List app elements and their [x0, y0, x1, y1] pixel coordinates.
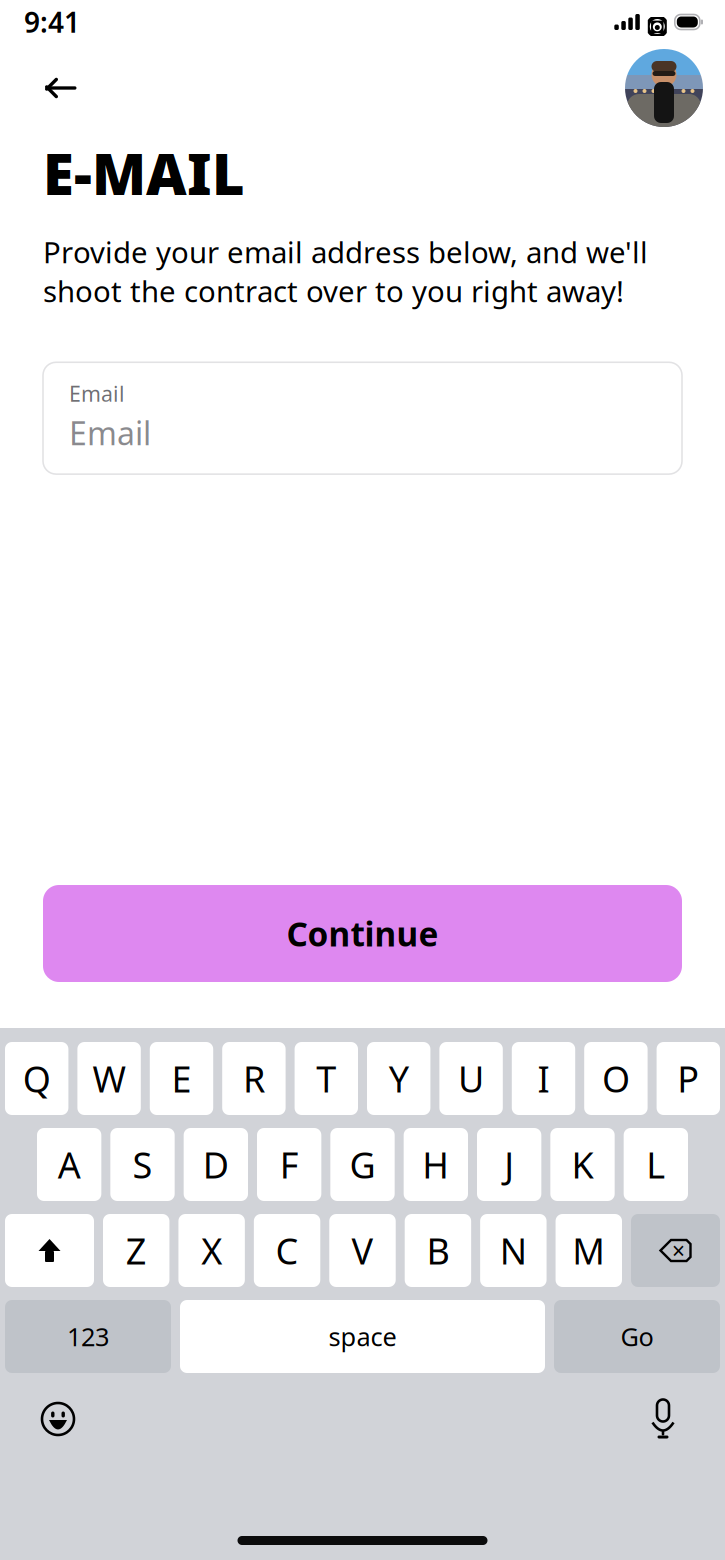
button[interactable]: O — [584, 1042, 648, 1115]
button[interactable]: Emoji — [26, 1391, 90, 1447]
button[interactable]: Shift — [5, 1214, 94, 1287]
button[interactable]: Z — [103, 1214, 169, 1287]
staticText: space — [328, 1320, 396, 1353]
button[interactable]: H — [404, 1128, 468, 1201]
button[interactable]: L — [624, 1128, 688, 1201]
button[interactable]: Email — [43, 362, 682, 474]
button[interactable]: Q — [5, 1042, 68, 1115]
staticText: P — [677, 1055, 699, 1102]
staticText: T — [316, 1055, 336, 1102]
button[interactable]: P — [657, 1042, 720, 1115]
staticText: H — [422, 1141, 449, 1188]
staticText: N — [500, 1227, 527, 1274]
button[interactable]: B — [405, 1214, 471, 1287]
button[interactable]: S — [110, 1128, 175, 1201]
button[interactable]: T — [295, 1042, 358, 1115]
staticText: 123 — [67, 1320, 109, 1353]
button[interactable]: N — [480, 1214, 546, 1287]
button[interactable]: K — [550, 1128, 615, 1201]
staticText: U — [458, 1055, 484, 1102]
staticText: Provide your email address below, and we… — [43, 232, 648, 310]
staticText: X — [201, 1227, 222, 1274]
staticText: B — [426, 1227, 449, 1274]
staticText: Email — [69, 379, 125, 408]
button[interactable]: space — [180, 1300, 545, 1373]
button[interactable]: W — [77, 1042, 141, 1115]
button[interactable]: Y — [367, 1042, 430, 1115]
button[interactable]: I — [512, 1042, 575, 1115]
button[interactable]: X — [178, 1214, 245, 1287]
staticText: D — [203, 1141, 229, 1188]
staticText: I — [537, 1055, 549, 1102]
staticText: M — [572, 1227, 605, 1274]
staticText: F — [280, 1141, 299, 1188]
button[interactable]: Back — [32, 63, 88, 113]
button[interactable]: Profile — [625, 49, 703, 127]
staticText: J — [504, 1141, 514, 1188]
button[interactable]: Delete — [631, 1214, 720, 1287]
button[interactable]: V — [329, 1214, 396, 1287]
staticText: L — [646, 1141, 665, 1188]
staticText: Email — [69, 412, 151, 454]
staticText: Z — [126, 1227, 147, 1274]
staticText: K — [571, 1141, 593, 1188]
staticText: Continue — [286, 911, 438, 956]
button[interactable]: C — [254, 1214, 320, 1287]
staticText: S — [132, 1141, 152, 1188]
button[interactable]: R — [222, 1042, 286, 1115]
button[interactable]: E — [150, 1042, 213, 1115]
button[interactable]: G — [330, 1128, 395, 1201]
staticText: Y — [389, 1055, 409, 1102]
staticText: Q — [23, 1055, 51, 1102]
staticText: G — [349, 1141, 375, 1188]
staticText: A — [58, 1141, 81, 1188]
button[interactable]: 123 — [5, 1300, 171, 1373]
staticText: C — [276, 1227, 299, 1274]
staticText: E — [171, 1055, 191, 1102]
staticText: × — [672, 1235, 685, 1265]
staticText: R — [243, 1055, 265, 1102]
button[interactable]: J — [477, 1128, 541, 1201]
staticText: W — [93, 1055, 126, 1102]
staticText: Go — [620, 1320, 653, 1353]
staticText: 9:41 — [24, 3, 80, 41]
button[interactable]: Continue — [43, 885, 682, 982]
staticText: O — [602, 1055, 630, 1102]
staticText: E-MAIL — [43, 136, 245, 210]
button[interactable]: D — [184, 1128, 248, 1201]
button[interactable]: M — [556, 1214, 622, 1287]
button[interactable]: Go — [554, 1300, 720, 1373]
button[interactable]: Dictation — [631, 1391, 695, 1447]
button[interactable]: A — [37, 1128, 101, 1201]
button[interactable]: U — [439, 1042, 503, 1115]
button[interactable]: F — [257, 1128, 321, 1201]
staticText: V — [351, 1227, 373, 1274]
